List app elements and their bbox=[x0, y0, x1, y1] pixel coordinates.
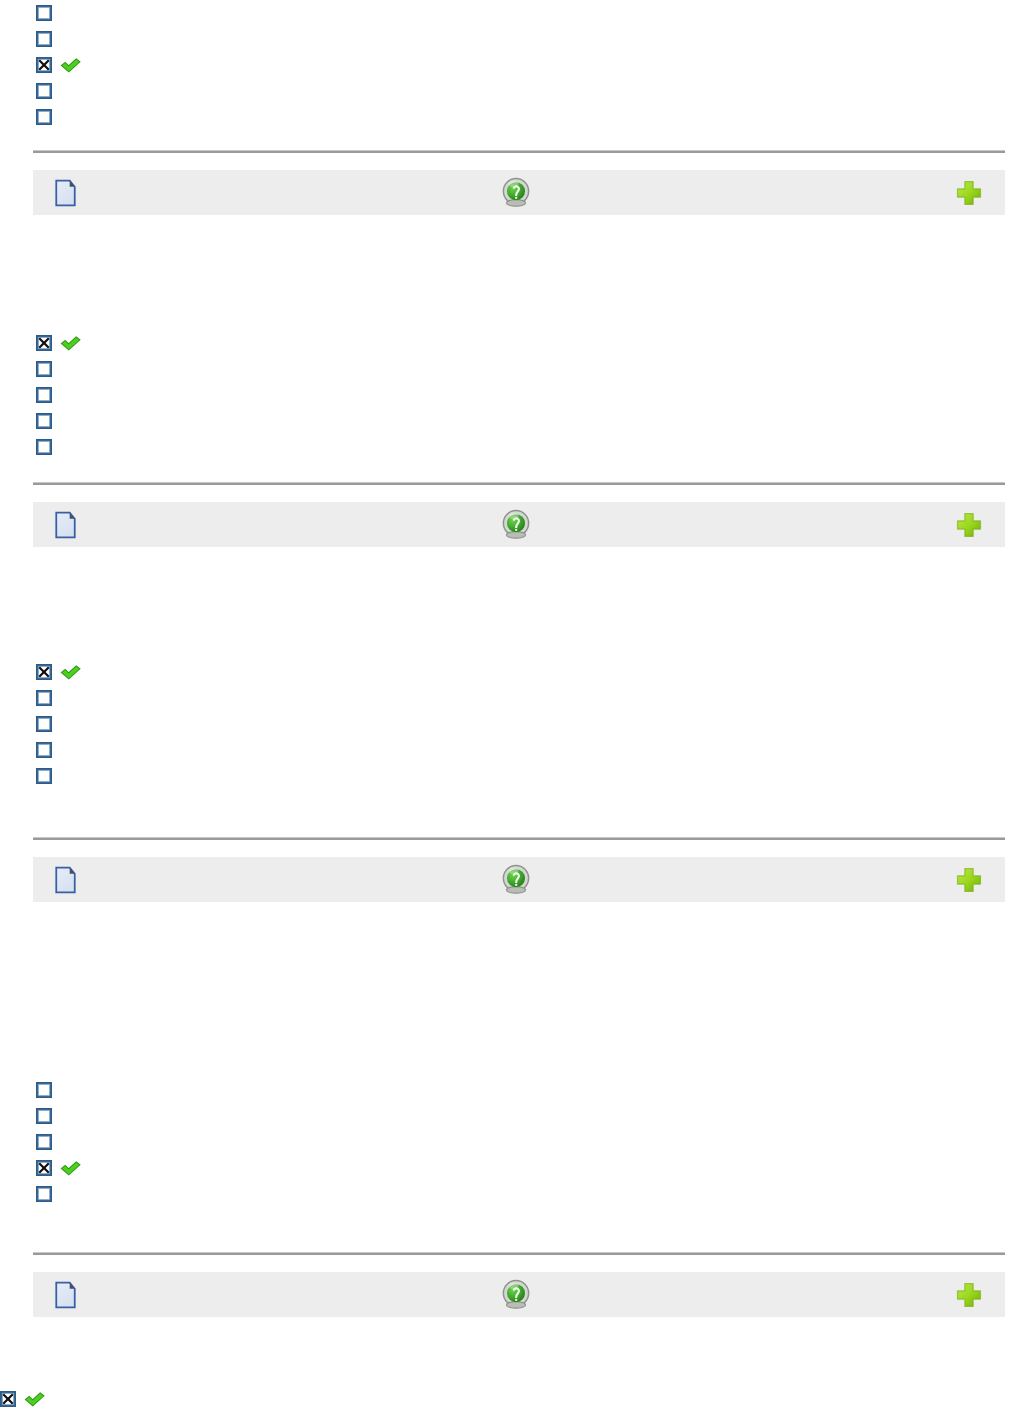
button[interactable] bbox=[0, 1103, 1009, 1129]
button[interactable] bbox=[0, 0, 1009, 26]
button[interactable]: Add bbox=[951, 1277, 987, 1313]
button[interactable]: Help bbox=[496, 860, 536, 900]
button[interactable] bbox=[0, 356, 1009, 382]
button[interactable]: New document bbox=[48, 508, 82, 542]
button[interactable] bbox=[0, 408, 1009, 434]
button[interactable] bbox=[0, 52, 1009, 78]
button[interactable] bbox=[0, 78, 1009, 104]
button[interactable]: Help bbox=[496, 505, 536, 545]
button[interactable] bbox=[0, 434, 1009, 460]
button[interactable]: New document bbox=[48, 1278, 82, 1312]
button[interactable]: Help bbox=[496, 173, 536, 213]
button[interactable] bbox=[0, 737, 1009, 763]
button[interactable]: New document bbox=[48, 176, 82, 210]
button[interactable] bbox=[0, 763, 1009, 789]
button[interactable] bbox=[0, 711, 1009, 737]
button[interactable]: Add bbox=[951, 175, 987, 211]
button[interactable] bbox=[0, 26, 1009, 52]
button[interactable] bbox=[0, 1155, 1009, 1181]
button[interactable] bbox=[0, 659, 1009, 685]
button[interactable] bbox=[0, 1077, 1009, 1103]
button[interactable] bbox=[0, 104, 1009, 130]
button[interactable] bbox=[0, 685, 1009, 711]
button[interactable] bbox=[0, 1129, 1009, 1155]
button[interactable]: Add bbox=[951, 862, 987, 898]
button[interactable] bbox=[0, 1181, 1009, 1207]
button[interactable] bbox=[0, 330, 1009, 356]
button[interactable]: Help bbox=[496, 1275, 536, 1315]
button[interactable]: New document bbox=[48, 863, 82, 897]
button[interactable] bbox=[0, 1389, 1009, 1409]
button[interactable] bbox=[0, 382, 1009, 408]
button[interactable]: Add bbox=[951, 507, 987, 543]
